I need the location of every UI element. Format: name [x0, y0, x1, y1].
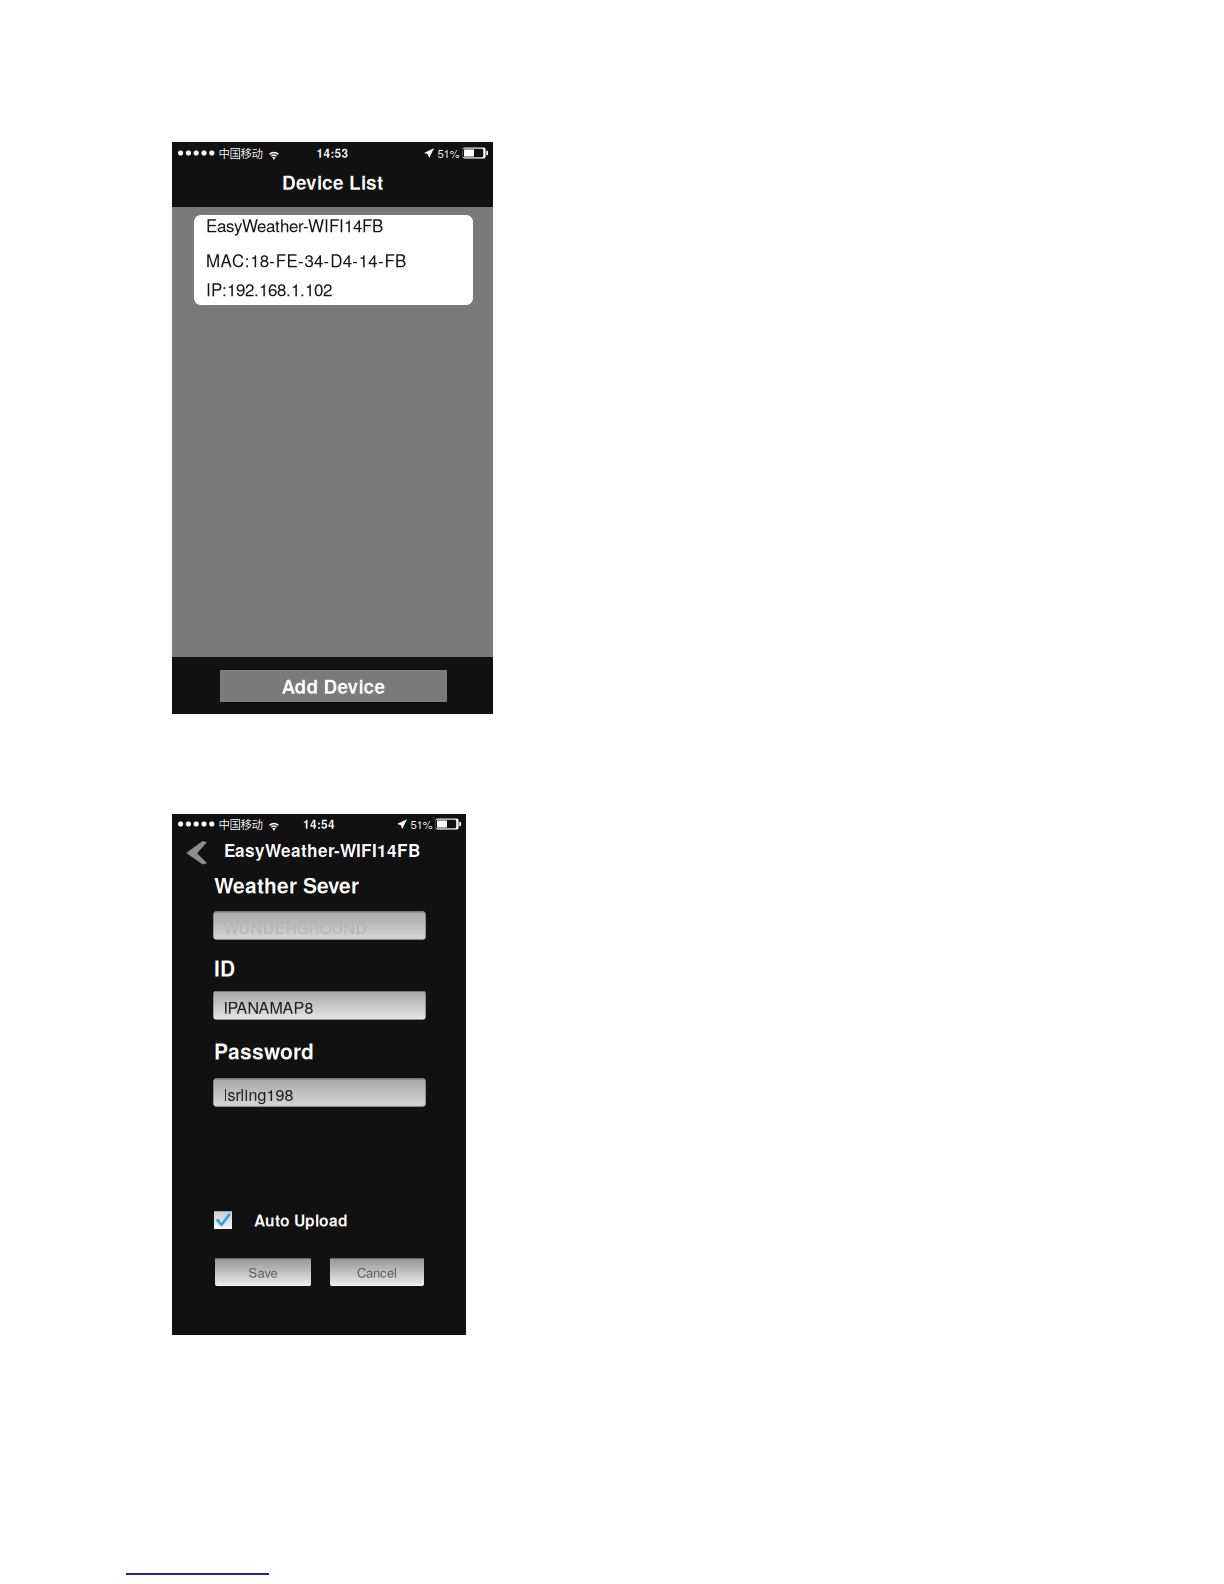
staticText: Save: [248, 1263, 277, 1281]
staticText: 中国移动: [218, 816, 262, 832]
button[interactable]: Cancel: [330, 1258, 424, 1286]
staticText: Weather Sever: [214, 870, 359, 900]
button[interactable]: EasyWeather-WIFI14FB: [194, 215, 473, 305]
staticText: EasyWeather-WIFI14FB: [206, 213, 383, 237]
staticText: Auto Upload: [254, 1209, 348, 1231]
staticText: Password: [214, 1036, 314, 1066]
staticText: Cancel: [357, 1263, 397, 1281]
staticText: 14:54: [303, 816, 335, 832]
staticText: ID: [214, 953, 235, 983]
staticText: Add Device: [281, 672, 385, 699]
staticText: 51%: [411, 816, 433, 832]
button[interactable]: Back: [184, 839, 208, 864]
staticText: 51%: [438, 145, 460, 161]
staticText: Device List: [282, 168, 383, 195]
staticText: WUNDERGROUND: [223, 915, 367, 938]
staticText: IP:192.168.1.102: [206, 277, 332, 301]
staticText: 中国移动: [218, 145, 262, 161]
staticText: EasyWeather-WIFI14FB: [224, 838, 420, 862]
staticText: MAC:18-FE-34-D4-14-FB: [206, 248, 406, 272]
button[interactable]: Auto Upload: [214, 1210, 374, 1230]
staticText: lsrling198: [223, 1082, 293, 1105]
staticText: 14:53: [316, 145, 348, 161]
button[interactable]: Add Device: [220, 670, 447, 702]
staticText: IPANAMAP8: [223, 995, 313, 1018]
button[interactable]: Save: [215, 1258, 311, 1286]
